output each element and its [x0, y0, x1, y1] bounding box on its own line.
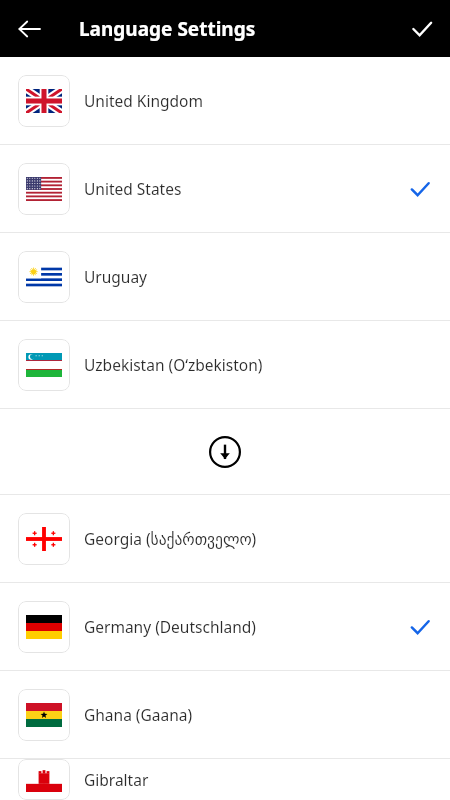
staticText: United Kingdom	[84, 90, 408, 111]
button[interactable]: Georgia (საქართველო)	[0, 495, 450, 582]
staticText: Georgia (საქართველო)	[84, 528, 408, 549]
staticText: Germany (Deutschland)	[84, 616, 408, 637]
button[interactable]: Show more languages	[0, 409, 450, 494]
button[interactable]: United Kingdom	[0, 57, 450, 144]
staticText: Gibraltar	[84, 769, 408, 790]
staticText: Ghana (Gaana)	[84, 704, 408, 725]
staticText: Uzbekistan (O‘zbekiston)	[84, 354, 408, 375]
button[interactable]: Gibraltar	[0, 759, 450, 800]
button[interactable]: Uruguay	[0, 233, 450, 320]
staticText: Language Settings	[79, 16, 393, 42]
button[interactable]: Confirm	[393, 0, 450, 57]
button[interactable]: Back	[0, 0, 57, 57]
button[interactable]: United States	[0, 145, 450, 232]
button[interactable]: Ghana (Gaana)	[0, 671, 450, 758]
staticText: Uruguay	[84, 266, 408, 287]
staticText: United States	[84, 178, 408, 199]
button[interactable]: Germany (Deutschland)	[0, 583, 450, 670]
button[interactable]: Uzbekistan (O‘zbekiston)	[0, 321, 450, 408]
